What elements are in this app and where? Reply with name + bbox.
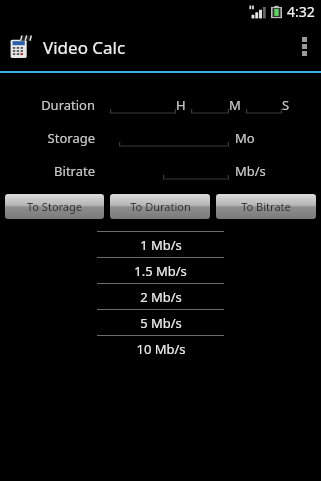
button[interactable] (163, 173, 229, 180)
button[interactable] (191, 107, 229, 114)
staticText: 5 Mb/s (140, 314, 182, 332)
staticText: To Duration (130, 199, 191, 214)
staticText: 2 Mb/s (140, 288, 182, 306)
staticText: Video Calc (43, 36, 126, 59)
staticText: H (176, 96, 191, 114)
button[interactable] (119, 140, 229, 147)
staticText: Duration (20, 96, 95, 114)
staticText: 10 Mb/s (136, 340, 186, 358)
staticText: M (229, 96, 246, 114)
staticText: S (282, 96, 294, 114)
button[interactable]: 2 Mb/s (97, 284, 224, 309)
button[interactable] (246, 107, 282, 114)
staticText: To Storage (27, 199, 82, 214)
button[interactable]: 1.5 Mb/s (97, 258, 224, 283)
button[interactable]: To Bitrate (216, 194, 316, 219)
button[interactable] (110, 107, 176, 114)
button[interactable]: 1 Mb/s (97, 232, 224, 257)
button[interactable]: 10 Mb/s (97, 336, 224, 361)
button[interactable]: To Storage (5, 194, 104, 219)
staticText: To Bitrate (241, 199, 291, 214)
staticText: 1.5 Mb/s (134, 262, 187, 280)
staticText: 4:32 (287, 2, 315, 21)
staticText: Mo (235, 129, 261, 147)
staticText: Storage (20, 129, 95, 147)
button[interactable]: To Duration (110, 194, 210, 219)
staticText: Mb/s (235, 162, 271, 180)
staticText: Bitrate (20, 162, 95, 180)
button[interactable]: 5 Mb/s (97, 310, 224, 335)
button[interactable]: More options (288, 22, 321, 71)
staticText: 1 Mb/s (140, 236, 182, 254)
